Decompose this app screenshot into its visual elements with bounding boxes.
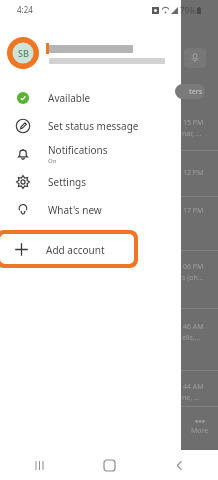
button[interactable]: More: [185, 419, 215, 436]
staticText: On: [48, 157, 57, 165]
staticText: Set status message: [48, 119, 139, 133]
button[interactable]: Voice search: [184, 48, 206, 68]
button[interactable]: Notifications: [0, 140, 181, 168]
button[interactable]: Recents: [26, 452, 52, 478]
button[interactable]: Set status message: [0, 112, 181, 140]
staticText: 15 PM: [183, 118, 204, 128]
staticText: Settings: [48, 175, 87, 189]
staticText: 79%: [180, 5, 196, 16]
button[interactable]: SB: [0, 30, 181, 76]
button[interactable]: Home: [96, 452, 122, 478]
staticText: ells,…: [182, 333, 201, 343]
staticText: Available: [48, 91, 91, 105]
staticText: 06 PM: [183, 262, 204, 272]
button[interactable]: Settings: [0, 168, 181, 196]
staticText: 46 AM: [183, 322, 204, 332]
staticText: ne, …: [182, 393, 200, 403]
staticText: 4:24: [17, 4, 33, 15]
button[interactable]: Available: [0, 84, 181, 112]
staticText: What's new: [48, 203, 102, 217]
button[interactable]: What's new: [0, 196, 181, 224]
staticText: Notifications: [48, 143, 108, 157]
staticText: Add account: [46, 243, 105, 257]
staticText: 44 AM: [183, 382, 204, 392]
staticText: 12 PM: [183, 168, 204, 178]
staticText: nar, …: [182, 129, 202, 139]
staticText: 17 PM: [183, 206, 204, 216]
button[interactable]: Add account: [0, 234, 134, 264]
staticText: SB: [18, 47, 29, 59]
button[interactable]: Back: [166, 452, 192, 478]
staticText: ters: [189, 87, 203, 97]
staticText: s (oh…: [182, 273, 204, 283]
staticText: More: [191, 426, 209, 436]
